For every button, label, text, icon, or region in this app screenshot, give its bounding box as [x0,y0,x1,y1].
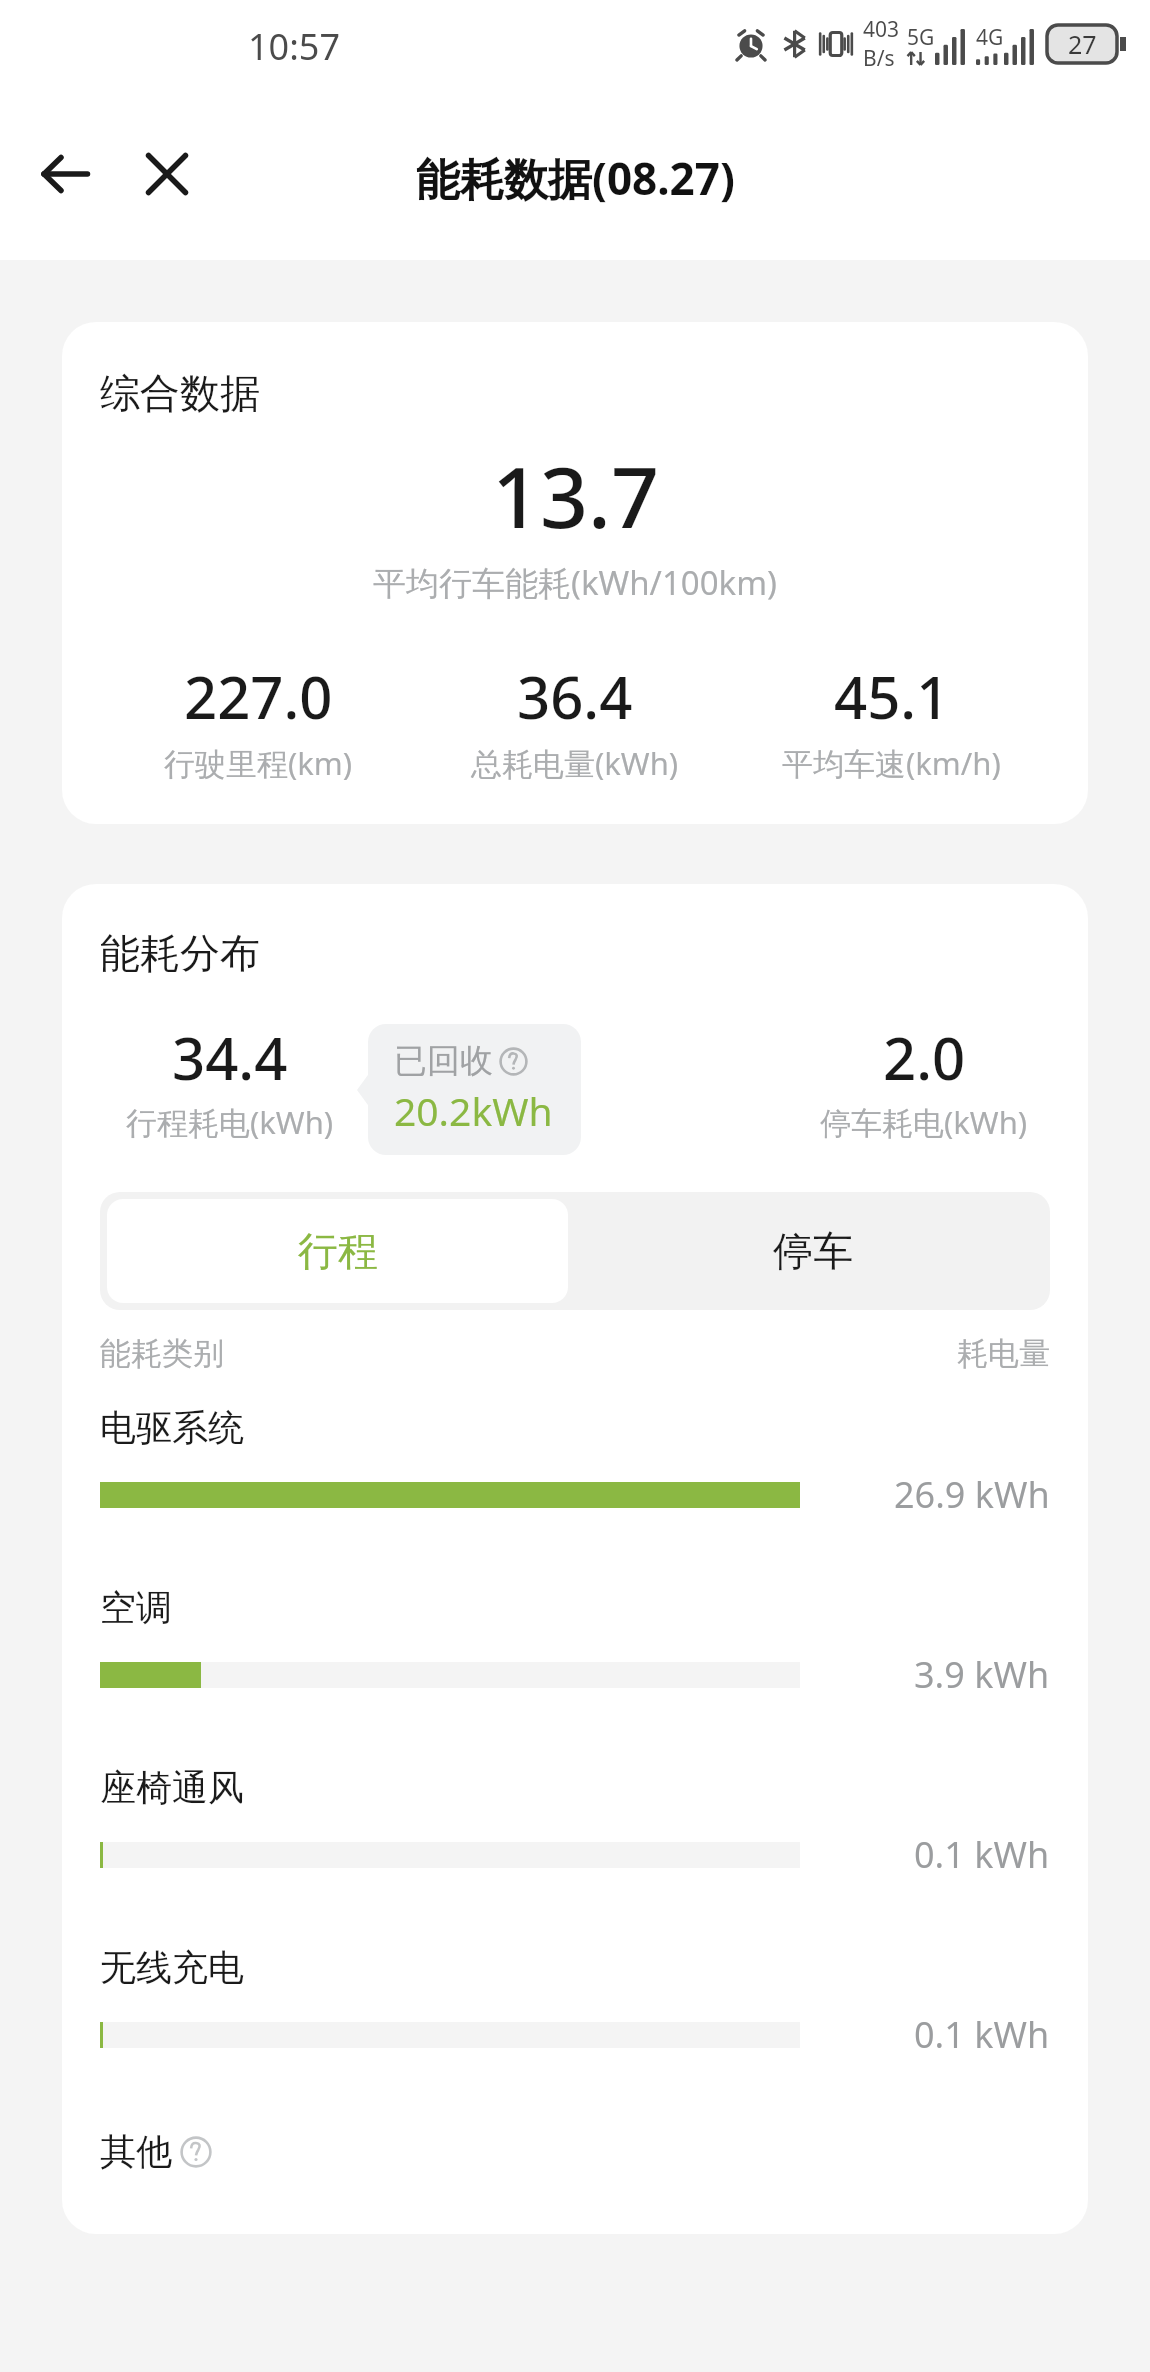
staticText: 座椅通风 [100,1765,244,1810]
staticText: 行驶里程(km) [164,742,353,784]
staticText: 27 [1068,27,1097,61]
staticText: 平均车速(km/h) [782,742,1001,784]
staticText: 3.9 kWh [914,1650,1050,1699]
staticText: 26.9 kWh [894,1470,1050,1519]
button[interactable]: 综合数据 [62,322,1088,824]
staticText: 13.7 [492,438,659,552]
staticText: 34.4 [172,1018,288,1097]
staticText: 能耗分布 [100,928,260,978]
staticText: 总耗电量(kWh) [471,742,679,784]
staticText: 平均行车能耗(kWh/100km) [373,560,777,605]
button[interactable]: 停车 [575,1192,1050,1310]
staticText: 已回收 [394,1040,493,1082]
staticText: 36.4 [517,657,633,736]
staticText: 5G [907,23,935,52]
staticText: 停车 [773,1226,853,1276]
staticText: 2.0 [883,1018,966,1097]
staticText: 电驱系统 [100,1405,244,1450]
staticText: 10:57 [248,22,341,71]
button[interactable]: 空调 [100,1585,1050,1765]
staticText: 20.2kWh [394,1084,553,1137]
button[interactable]: 其他 [100,2129,212,2174]
staticText: 227.0 [184,657,333,736]
button[interactable]: 行程 [107,1199,568,1303]
staticText: B/s [863,44,895,73]
staticText: 其他 [100,2129,172,2174]
staticText: 空调 [100,1585,172,1630]
staticText: 综合数据 [100,368,260,418]
button[interactable]: 电驱系统 [100,1405,1050,1585]
staticText: 行程耗电(kWh) [126,1101,334,1143]
staticText: 行程 [298,1226,378,1276]
staticText: 停车耗电(kWh) [820,1101,1028,1143]
staticText: 耗电量 [957,1334,1050,1373]
button[interactable]: 已回收 [368,1024,581,1155]
staticText: 4G [976,23,1004,52]
button[interactable]: 座椅通风 [100,1765,1050,1945]
staticText: 45.1 [834,657,950,736]
staticText: 能耗类别 [100,1334,224,1373]
staticText: 0.1 kWh [914,2010,1050,2059]
button[interactable]: Close [126,133,208,215]
staticText: 无线充电 [100,1945,244,1990]
staticText: 0.1 kWh [914,1830,1050,1879]
button[interactable]: 无线充电 [100,1945,1050,2125]
button[interactable]: Back [24,133,106,215]
staticText: 能耗数据(08.27) [416,148,735,208]
staticText: 403 [863,15,900,44]
